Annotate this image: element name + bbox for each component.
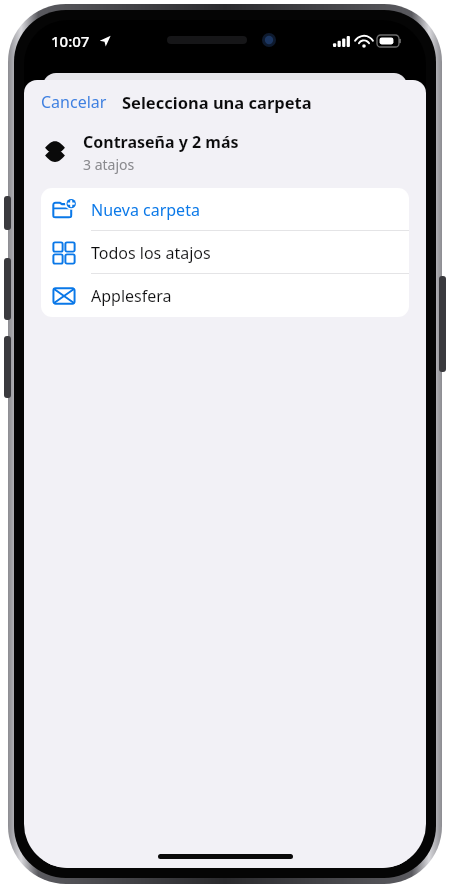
- staticText: Contraseña y 2 más: [83, 131, 239, 153]
- button[interactable]: Nueva carpeta: [41, 188, 409, 231]
- other: Todos los atajos: [52, 241, 76, 265]
- staticText: 10:07: [51, 31, 90, 51]
- staticText: Applesfera: [91, 285, 172, 307]
- staticText: Selecciona una carpeta: [122, 91, 312, 113]
- staticText: Cancelar: [41, 91, 107, 113]
- button[interactable]: Todos los atajos: [41, 231, 409, 274]
- staticText: 3 atajos: [83, 155, 135, 174]
- button[interactable]: Cancelar: [40, 87, 108, 117]
- staticText: Todos los atajos: [91, 242, 211, 264]
- other: Nueva carpeta: [52, 198, 76, 222]
- other: Applesfera: [52, 284, 76, 308]
- staticText: Nueva carpeta: [91, 199, 200, 221]
- button[interactable]: Applesfera: [41, 274, 409, 317]
